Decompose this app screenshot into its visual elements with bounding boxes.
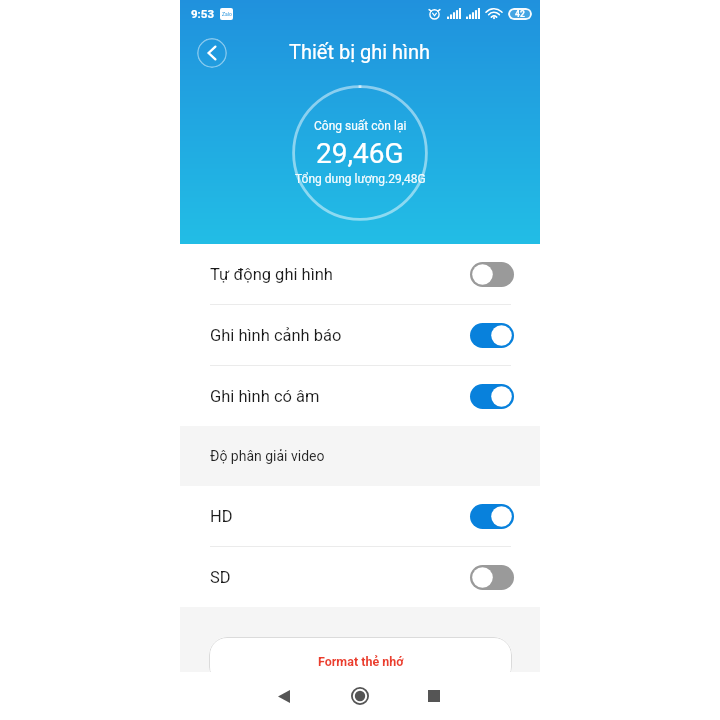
staticText: Ghi hình có âm	[210, 387, 320, 406]
staticText: Thiết bị ghi hình	[289, 40, 431, 63]
staticText: Tổng dung lượng.29,48G	[295, 172, 426, 186]
staticText: Công suất còn lại	[314, 119, 407, 133]
button[interactable]: Home	[340, 676, 380, 716]
button[interactable]: Ghi hình cảnh báo	[180, 305, 540, 365]
staticText: 42	[515, 9, 525, 19]
button[interactable]: Back	[197, 38, 227, 68]
button[interactable]: HD	[180, 486, 540, 546]
button[interactable]: Tự động ghi hình	[180, 244, 540, 304]
staticText: SD	[210, 568, 231, 587]
button[interactable]: SD	[180, 547, 540, 607]
button[interactable]: Format thẻ nhớ	[209, 637, 512, 685]
button[interactable]: Recent apps	[414, 676, 454, 716]
staticText: 9:53	[191, 7, 215, 20]
button[interactable]: Back	[264, 676, 304, 716]
staticText: Tự động ghi hình	[210, 265, 333, 284]
staticText: Độ phân giải video	[210, 448, 325, 464]
staticText: Zalo	[222, 11, 232, 17]
button[interactable]: Ghi hình có âm	[180, 366, 540, 426]
staticText: Ghi hình cảnh báo	[210, 326, 342, 345]
staticText: HD	[210, 507, 233, 526]
staticText: 29,46G	[316, 137, 404, 170]
staticText: Format thẻ nhớ	[318, 654, 404, 669]
